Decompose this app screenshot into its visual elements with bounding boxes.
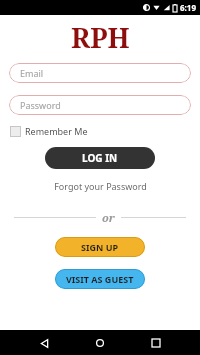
staticText: SIGN UP [81,241,119,253]
staticText: Email [20,67,44,79]
staticText: or [102,210,115,225]
button[interactable]: Password [9,95,191,115]
staticText: 6:19 [180,2,196,13]
button[interactable]: Home [88,331,112,355]
button[interactable]: SIGN UP [55,237,145,257]
button[interactable]: Email [9,63,191,83]
staticText: RPH [71,19,130,56]
staticText: Password [20,99,61,111]
staticText: LOG IN [82,151,118,165]
button[interactable]: VISIT AS GUEST [55,269,145,289]
staticText: Remember Me [25,125,88,137]
button[interactable]: LOG IN [45,147,155,169]
button[interactable]: Forgot your Password [50,178,151,194]
staticText: VISIT AS GUEST [66,273,134,285]
button[interactable]: Recent apps [144,331,168,355]
button[interactable]: Remember Me [10,125,88,137]
button[interactable]: Back [32,331,56,355]
